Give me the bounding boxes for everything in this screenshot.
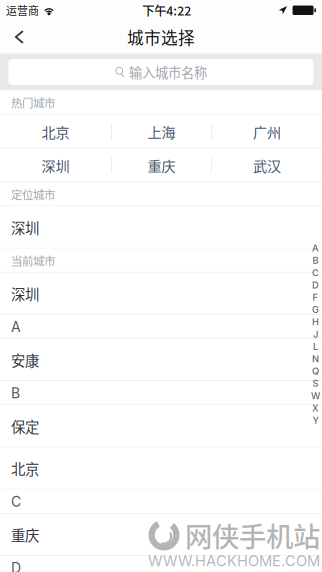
button[interactable]: J (309, 328, 322, 340)
staticText: C (11, 493, 21, 510)
staticText: 深圳 (11, 283, 39, 304)
staticText: 广州 (253, 121, 281, 142)
button[interactable]: 武汉 (212, 148, 322, 182)
button[interactable]: 深圳 (0, 148, 111, 182)
staticText: G (312, 304, 319, 315)
staticText: H (312, 316, 319, 328)
staticText: N (312, 353, 319, 364)
staticText: 深圳 (11, 217, 39, 238)
staticText: 重庆 (148, 155, 176, 176)
staticText: C (312, 267, 319, 278)
staticText: WWW.HACKHOME.COM (148, 552, 320, 570)
button[interactable]: A (309, 242, 322, 254)
staticText: A (11, 318, 21, 335)
staticText: 网侠手机站 (185, 515, 320, 555)
staticText: 下午4:22 (142, 1, 191, 19)
staticText: 当前城市 (11, 252, 55, 269)
button[interactable]: L (309, 340, 322, 353)
button[interactable]: Q (309, 365, 322, 377)
staticText: Y (312, 415, 318, 426)
staticText: W (311, 390, 320, 401)
button[interactable]: 安康 (0, 339, 322, 381)
staticText: 保定 (11, 416, 39, 437)
button[interactable]: X (309, 402, 322, 414)
button[interactable]: N (309, 353, 322, 365)
button[interactable]: Y (309, 414, 322, 426)
staticText: A (312, 242, 319, 254)
staticText: 重庆 (11, 524, 39, 545)
button[interactable]: 北京 (0, 447, 322, 490)
staticText: D (312, 279, 319, 291)
staticText: 热门城市 (11, 94, 55, 111)
staticText: 城市选择 (127, 25, 195, 49)
staticText: L (313, 341, 318, 352)
button[interactable]: S (309, 377, 322, 390)
button[interactable]: F (309, 291, 322, 303)
button[interactable]: 重庆 (0, 514, 322, 556)
button[interactable]: 深圳 (0, 273, 322, 315)
staticText: J (313, 329, 318, 340)
staticText: 定位城市 (11, 186, 55, 202)
staticText: Q (312, 365, 319, 377)
button[interactable]: 输入城市名称 (8, 59, 313, 85)
button[interactable]: 深圳 (0, 206, 322, 248)
staticText: F (312, 292, 318, 303)
staticText: D (11, 559, 21, 572)
staticText: 北京 (11, 458, 39, 479)
button[interactable]: 上海 (112, 115, 211, 148)
staticText: S (312, 378, 318, 389)
staticText: 安康 (11, 350, 39, 370)
button[interactable]: 重庆 (112, 148, 211, 182)
staticText: 运营商 (6, 2, 39, 18)
button[interactable]: 北京 (0, 115, 111, 148)
staticText: B (312, 255, 318, 266)
button[interactable]: 广州 (212, 115, 322, 148)
staticText: 上海 (148, 121, 176, 142)
button[interactable]: D (309, 279, 322, 291)
staticText: 深圳 (42, 155, 70, 176)
staticText: X (312, 402, 319, 414)
staticText: 武汉 (253, 155, 281, 176)
button[interactable]: C (309, 267, 322, 279)
staticText: 输入城市名称 (129, 62, 207, 82)
button[interactable]: W (309, 390, 322, 402)
button[interactable]: 保定 (0, 405, 322, 447)
staticText: 北京 (42, 121, 70, 142)
button[interactable]: 返回 (0, 20, 38, 54)
button[interactable]: B (309, 254, 322, 267)
staticText: B (11, 385, 20, 402)
button[interactable]: G (309, 303, 322, 316)
button[interactable]: H (309, 316, 322, 328)
